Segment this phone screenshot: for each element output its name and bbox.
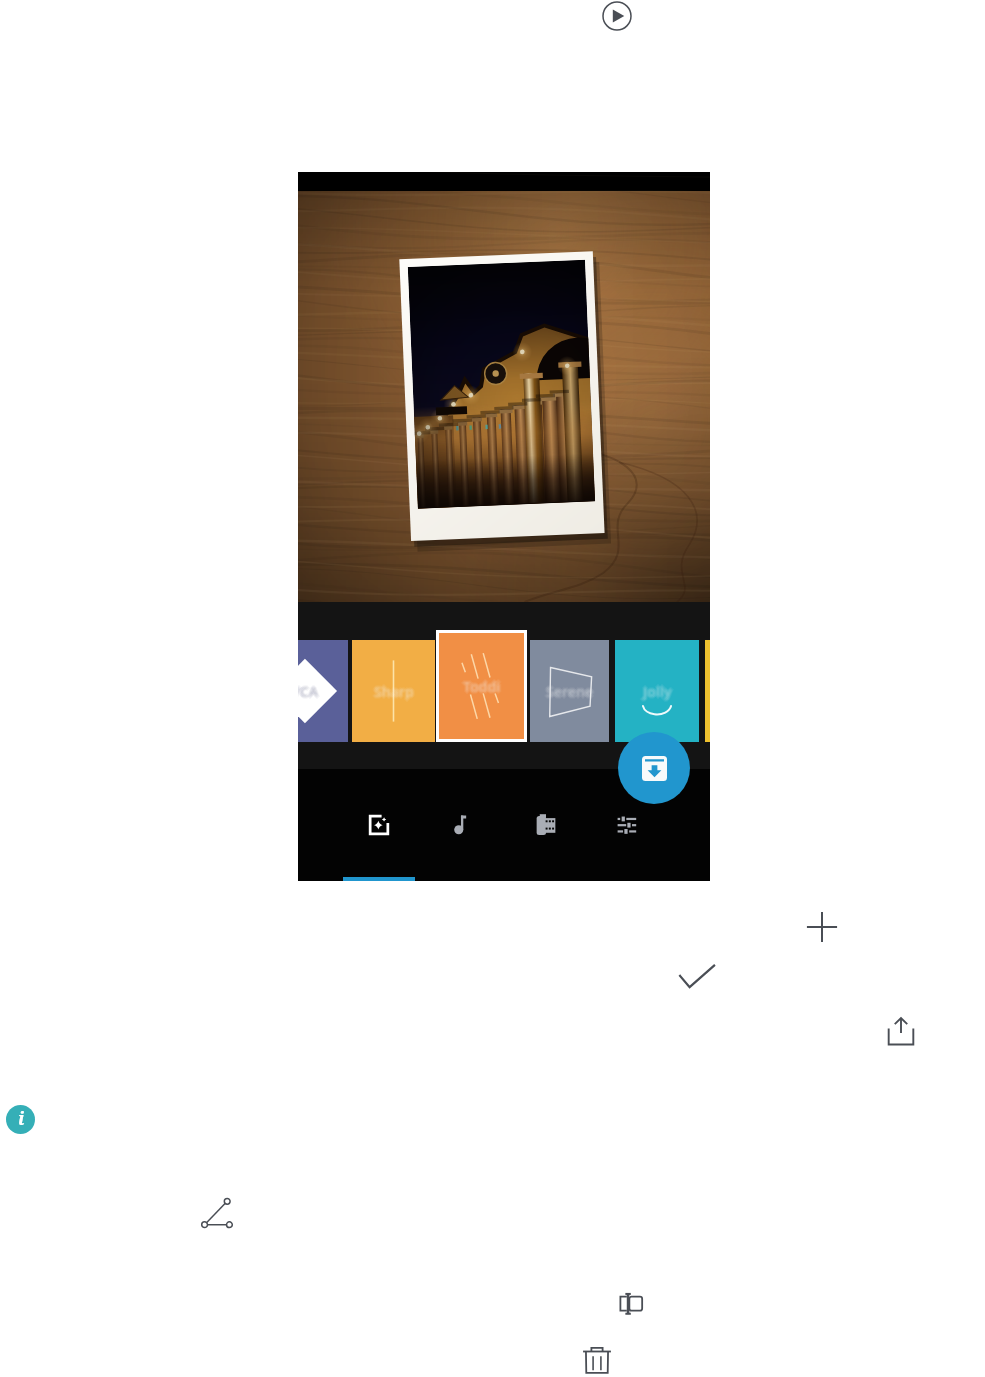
staticText: Sharp	[373, 683, 413, 702]
staticText: Jolly	[642, 683, 671, 702]
staticText: VCA	[298, 682, 317, 701]
staticText: Sharp	[376, 682, 416, 701]
staticText: VCA	[298, 682, 321, 701]
staticText: Sharp	[373, 681, 413, 700]
staticText: Toddi	[463, 679, 501, 698]
button[interactable]: Info	[6, 1105, 35, 1134]
staticText: Serene	[545, 681, 592, 700]
staticText: Jolly	[642, 681, 671, 700]
button[interactable]: Jolly filter	[615, 640, 699, 742]
staticText: Jolly	[643, 680, 672, 699]
staticText: Sharp	[374, 680, 414, 699]
button[interactable]: Done	[679, 960, 715, 996]
button[interactable]: Save	[618, 732, 690, 804]
staticText: Sharp	[372, 682, 412, 701]
button[interactable]: Connections	[200, 1196, 234, 1230]
button[interactable]: Add	[806, 911, 838, 943]
button[interactable]: Effects	[359, 805, 399, 845]
staticText: Toddi	[464, 676, 502, 695]
staticText: Jolly	[643, 682, 672, 701]
staticText: Jolly	[645, 682, 674, 701]
staticText: Toddi	[462, 678, 500, 697]
button[interactable]: Music	[442, 805, 482, 845]
staticText: Toddi	[462, 676, 500, 695]
staticText: Sharp	[375, 683, 415, 702]
staticText: VCA	[298, 681, 318, 700]
staticText: Toddi	[463, 677, 501, 696]
staticText: Serene	[545, 683, 592, 702]
staticText: VCA	[298, 680, 319, 699]
staticText: VCA	[298, 681, 320, 700]
button[interactable]: Sharp filter	[352, 640, 435, 742]
button[interactable]: Adjust	[608, 805, 648, 845]
staticText: Toddi	[464, 678, 502, 697]
staticText: Jolly	[644, 683, 673, 702]
staticText: Serene	[546, 684, 593, 703]
button[interactable]: Toddi filter	[439, 633, 524, 739]
staticText: Sharp	[374, 684, 414, 703]
staticText: Serene	[546, 682, 593, 701]
staticText: Serene	[546, 680, 593, 699]
staticText: VCA	[298, 683, 320, 702]
staticText: Toddi	[463, 675, 501, 694]
staticText: Toddi	[465, 677, 503, 696]
staticText: Jolly	[641, 682, 670, 701]
staticText: Sharp	[374, 682, 414, 701]
staticText: Serene	[547, 681, 594, 700]
staticText: Serene	[547, 683, 594, 702]
staticText: Jolly	[643, 684, 672, 703]
button[interactable]: Serene filter	[530, 640, 609, 742]
staticText: Serene	[544, 682, 591, 701]
button[interactable]: Share	[885, 1015, 917, 1047]
staticText: VCA	[298, 683, 318, 702]
staticText: Sharp	[375, 681, 415, 700]
button[interactable]: Play	[602, 1, 632, 31]
button[interactable]: Frames	[526, 805, 566, 845]
button[interactable]: VCA filter	[298, 640, 348, 742]
staticText: Jolly	[644, 681, 673, 700]
staticText: Serene	[548, 682, 595, 701]
staticText: Toddi	[461, 677, 499, 696]
staticText: i	[18, 1106, 25, 1131]
button[interactable]: Delete	[580, 1343, 614, 1377]
staticText: VCA	[298, 682, 319, 701]
staticText: VCA	[298, 684, 319, 703]
button[interactable]: Flip	[614, 1288, 646, 1320]
